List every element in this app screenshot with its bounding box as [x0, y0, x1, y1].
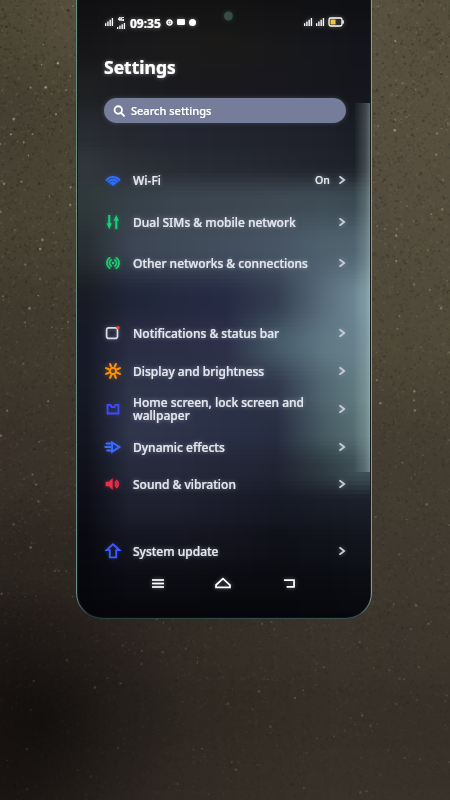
button[interactable]: Home screen, lock screen and wallpaper — [78, 389, 370, 428]
staticText: Wi-Fi — [133, 172, 161, 188]
staticText: Search settings — [131, 103, 212, 118]
button[interactable]: Search settings — [104, 98, 346, 123]
staticText: Notifications & status bar — [133, 325, 280, 341]
staticText: Other networks & connections — [133, 255, 308, 271]
staticText: 4G — [118, 16, 125, 23]
button[interactable]: Dual SIMs & mobile network — [78, 202, 370, 241]
staticText: Notifications & status bar — [133, 325, 280, 341]
button[interactable]: Display and brightness — [78, 351, 370, 390]
staticText: 4G — [118, 16, 125, 23]
button[interactable]: Sound & vibration — [78, 464, 370, 503]
button[interactable]: Recent apps — [125, 570, 190, 596]
staticText: Wi-Fi — [133, 172, 161, 188]
button[interactable]: Back — [256, 570, 322, 596]
button[interactable]: System update — [78, 531, 370, 570]
staticText: Search settings — [131, 103, 212, 118]
button[interactable]: Back — [256, 570, 322, 596]
button[interactable]: Home screen, lock screen and wallpaper — [78, 389, 370, 428]
button[interactable]: Home — [190, 570, 256, 596]
staticText: Home screen, lock screen and wallpaper — [133, 394, 305, 424]
staticText: On — [315, 173, 330, 187]
staticText: Display and brightness — [133, 363, 265, 379]
button[interactable]: Recent apps — [125, 570, 190, 596]
staticText: Dynamic effects — [133, 439, 225, 455]
staticText: Other networks & connections — [133, 255, 308, 271]
staticText: Dual SIMs & mobile network — [133, 214, 296, 230]
button[interactable]: Other networks & connections — [78, 243, 370, 282]
button[interactable]: Wi-Fi — [78, 160, 370, 199]
button[interactable]: System update — [78, 531, 370, 570]
staticText: Settings — [104, 55, 176, 79]
staticText: System update — [133, 543, 219, 559]
button[interactable]: Dynamic effects — [78, 427, 370, 466]
staticText: Display and brightness — [133, 363, 265, 379]
staticText: Home screen, lock screen and wallpaper — [133, 394, 305, 424]
button[interactable]: Notifications & status bar — [78, 313, 370, 352]
button[interactable]: Display and brightness — [78, 351, 370, 390]
staticText: On — [315, 173, 330, 187]
staticText: Sound & vibration — [133, 476, 236, 492]
staticText: Settings — [104, 55, 176, 79]
button[interactable]: Wi-Fi — [78, 160, 370, 199]
staticText: 09:35 — [130, 15, 161, 29]
button[interactable]: Notifications & status bar — [78, 313, 370, 352]
button[interactable]: Other networks & connections — [78, 243, 370, 282]
button[interactable]: Dual SIMs & mobile network — [78, 202, 370, 241]
staticText: Dynamic effects — [133, 439, 225, 455]
button[interactable]: Home — [190, 570, 256, 596]
button[interactable]: Dynamic effects — [78, 427, 370, 466]
button[interactable]: Search settings — [104, 98, 346, 123]
staticText: 09:35 — [130, 15, 161, 29]
staticText: Dual SIMs & mobile network — [133, 214, 296, 230]
staticText: Sound & vibration — [133, 476, 236, 492]
staticText: System update — [133, 543, 219, 559]
button[interactable]: Sound & vibration — [78, 464, 370, 503]
